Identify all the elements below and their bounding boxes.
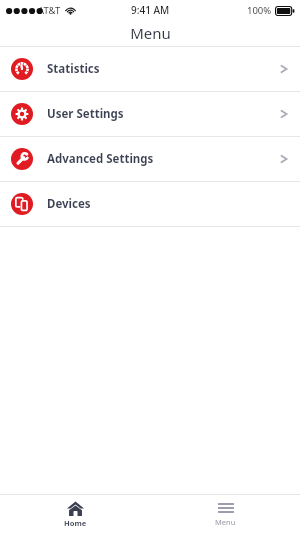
button[interactable]: Menu (150, 495, 300, 533)
staticText: User Settings (47, 106, 280, 122)
staticText: AT&T (38, 4, 61, 17)
staticText: Advanced Settings (47, 151, 280, 167)
staticText: Home (64, 518, 87, 528)
button[interactable]: Home (0, 495, 150, 533)
staticText: Statistics (47, 61, 280, 77)
button[interactable]: Advanced Settings (0, 137, 300, 181)
staticText: 100% (247, 4, 272, 17)
staticText: Devices (47, 196, 280, 212)
staticText: Menu (130, 23, 171, 43)
button[interactable]: Devices (0, 182, 300, 226)
staticText: 9:41 AM (131, 3, 170, 17)
button[interactable]: User Settings (0, 92, 300, 136)
button[interactable]: Statistics (0, 47, 300, 91)
staticText: Menu (215, 517, 236, 527)
